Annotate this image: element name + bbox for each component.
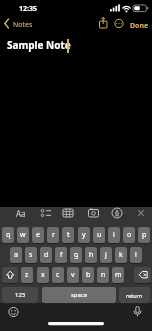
staticText: i [113, 230, 115, 240]
button[interactable] [132, 204, 150, 222]
staticText: a [14, 250, 18, 260]
button[interactable]: a [10, 247, 22, 263]
staticText: b [86, 270, 91, 280]
button[interactable]: y [78, 227, 90, 243]
button[interactable]: m [112, 267, 124, 283]
button[interactable]: c [52, 267, 64, 283]
button[interactable]: i [108, 227, 120, 243]
button[interactable] [107, 204, 127, 222]
button[interactable]: t [62, 227, 74, 243]
button[interactable]: p [138, 227, 150, 243]
staticText: space [71, 291, 88, 299]
button[interactable]: h [85, 247, 97, 263]
button[interactable]: r [47, 227, 59, 243]
button[interactable] [96, 16, 110, 30]
button[interactable]: k [115, 247, 127, 263]
button[interactable]: w [17, 227, 29, 243]
button[interactable]: n [97, 267, 109, 283]
staticText: j [105, 250, 107, 260]
staticText: s [29, 250, 33, 260]
button[interactable] [36, 204, 57, 222]
button[interactable]: x [37, 267, 49, 283]
staticText: k [119, 250, 123, 260]
button[interactable] [59, 204, 78, 222]
staticText: l [135, 250, 137, 260]
staticText: m [115, 270, 122, 280]
staticText: Aa [16, 208, 26, 219]
staticText: return [126, 292, 143, 299]
staticText: Done [130, 21, 149, 31]
button[interactable] [10, 204, 34, 222]
button[interactable]: l [130, 247, 142, 263]
staticText: o [127, 230, 132, 240]
staticText: v [71, 270, 75, 280]
button[interactable] [127, 16, 152, 30]
button[interactable]: j [100, 247, 112, 263]
button[interactable]: f [55, 247, 67, 263]
button[interactable]: u [93, 227, 105, 243]
staticText: r [52, 230, 55, 240]
button[interactable] [2, 267, 18, 283]
button[interactable] [128, 303, 148, 323]
staticText: w [20, 230, 26, 240]
button[interactable]: g [70, 247, 82, 263]
staticText: y [82, 230, 86, 240]
button[interactable]: 123 [2, 287, 38, 303]
staticText: x [41, 270, 45, 280]
staticText: e [36, 230, 40, 240]
staticText: Notes [13, 20, 33, 30]
button[interactable]: s [25, 247, 37, 263]
staticText: 12:35 [19, 4, 37, 14]
staticText: 123 [15, 291, 26, 299]
staticText: h [89, 250, 94, 260]
staticText: c [56, 270, 60, 280]
button[interactable]: return [119, 287, 150, 303]
staticText: u [97, 230, 102, 240]
staticText: p [142, 230, 147, 240]
button[interactable]: e [32, 227, 44, 243]
button[interactable]: space [42, 287, 116, 303]
staticText: t [67, 230, 70, 240]
button[interactable]: v [67, 267, 79, 283]
button[interactable] [134, 267, 151, 283]
button[interactable] [83, 204, 104, 222]
button[interactable]: b [82, 267, 94, 283]
staticText: z [25, 270, 29, 280]
staticText: q [6, 230, 11, 240]
staticText: n [101, 270, 106, 280]
button[interactable]: o [123, 227, 135, 243]
button[interactable] [4, 303, 24, 323]
staticText: d [44, 250, 49, 260]
button[interactable]: z [21, 267, 33, 283]
staticText: Sample Note [7, 38, 71, 52]
button[interactable] [0, 16, 44, 32]
staticText: g [74, 250, 79, 260]
staticText: f [60, 250, 63, 260]
button[interactable]: q [2, 227, 14, 243]
button[interactable]: d [40, 247, 52, 263]
button[interactable] [112, 16, 126, 30]
